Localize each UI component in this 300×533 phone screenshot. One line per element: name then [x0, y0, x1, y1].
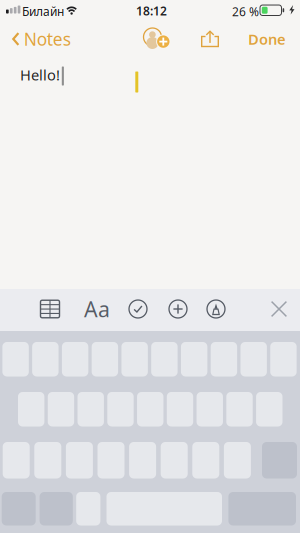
button[interactable]: Key [151, 342, 178, 376]
button[interactable]: Notes [7, 24, 76, 54]
staticText: 26 % [232, 4, 259, 20]
button[interactable]: Share [195, 24, 225, 54]
staticText: Done [248, 29, 286, 49]
button[interactable]: Key [270, 342, 297, 376]
button[interactable]: Key [226, 392, 253, 426]
staticText: Hello! [20, 65, 60, 84]
button[interactable]: Key [2, 342, 29, 376]
button[interactable]: Key [107, 392, 134, 426]
button[interactable]: Markup [202, 292, 230, 326]
button[interactable]: Hide keyboard [265, 292, 293, 326]
button[interactable]: Key [76, 492, 100, 525]
staticText: 18:12 [136, 3, 167, 19]
button[interactable]: Key [121, 342, 148, 376]
button[interactable]: Done [242, 24, 292, 54]
staticText: Notes [24, 27, 71, 50]
staticText: Aa [84, 295, 110, 323]
button[interactable]: Key [32, 342, 59, 376]
button[interactable]: Add People [140, 23, 174, 53]
button[interactable]: Key [240, 342, 267, 376]
button[interactable]: Add attachment [164, 292, 192, 326]
button[interactable]: Checklist [124, 292, 152, 326]
staticText: Билайн [22, 3, 64, 19]
button[interactable]: Table [35, 292, 65, 326]
button[interactable]: Aa [81, 292, 113, 326]
